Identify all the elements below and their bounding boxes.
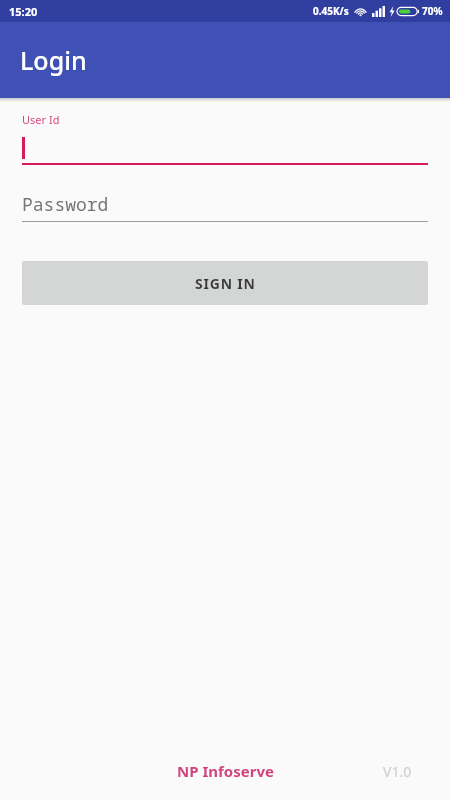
staticText: 0.45K/s: [313, 4, 349, 18]
button[interactable]: Password: [22, 191, 428, 222]
staticText: V1.0: [383, 762, 412, 781]
button[interactable]: SIGN IN: [22, 261, 428, 305]
staticText: 15:20: [9, 4, 38, 19]
staticText: User Id: [22, 112, 60, 127]
staticText: Password: [22, 192, 109, 217]
staticText: SIGN IN: [195, 274, 256, 293]
staticText: 70%: [422, 4, 443, 18]
staticText: Login: [20, 43, 87, 77]
button[interactable]: NP Infoserve: [177, 761, 274, 781]
button[interactable]: User Id: [22, 112, 428, 165]
